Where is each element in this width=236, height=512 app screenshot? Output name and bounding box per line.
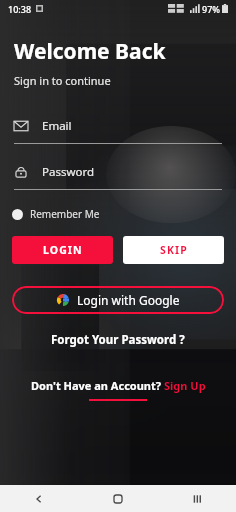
button[interactable]: Password	[14, 164, 222, 190]
button[interactable]: Forgot Your Password ?	[0, 332, 236, 348]
button[interactable]: Google	[12, 286, 224, 314]
button[interactable]: SKIP	[123, 236, 224, 264]
button[interactable]: Don't Have an Account?	[31, 378, 206, 393]
staticText: 97%	[202, 3, 220, 15]
staticText: Login with Google	[77, 292, 180, 308]
other: Google	[57, 294, 69, 306]
staticText: Remember Me	[30, 207, 100, 221]
staticText: Don't Have an Account?	[31, 378, 164, 393]
button[interactable]: Email	[14, 118, 222, 144]
staticText: 10:38	[8, 3, 32, 15]
staticText: SKIP	[160, 243, 188, 257]
staticText: Sign Up	[164, 378, 206, 393]
staticText: Sign in to continue	[14, 73, 111, 88]
button[interactable]: Back	[0, 485, 78, 512]
staticText: Password	[42, 164, 95, 180]
button[interactable]: Remember Me	[12, 207, 100, 221]
button[interactable]: Home	[78, 485, 157, 512]
button[interactable]: LOGIN	[12, 236, 113, 264]
other: Password	[14, 165, 28, 179]
staticText: Welcome Back	[14, 37, 166, 66]
staticText: Email	[42, 118, 72, 134]
staticText: LOGIN	[43, 243, 83, 257]
button[interactable]: Recents	[157, 485, 236, 512]
staticText: Forgot Your Password ?	[51, 332, 185, 348]
other: Email	[14, 119, 28, 133]
